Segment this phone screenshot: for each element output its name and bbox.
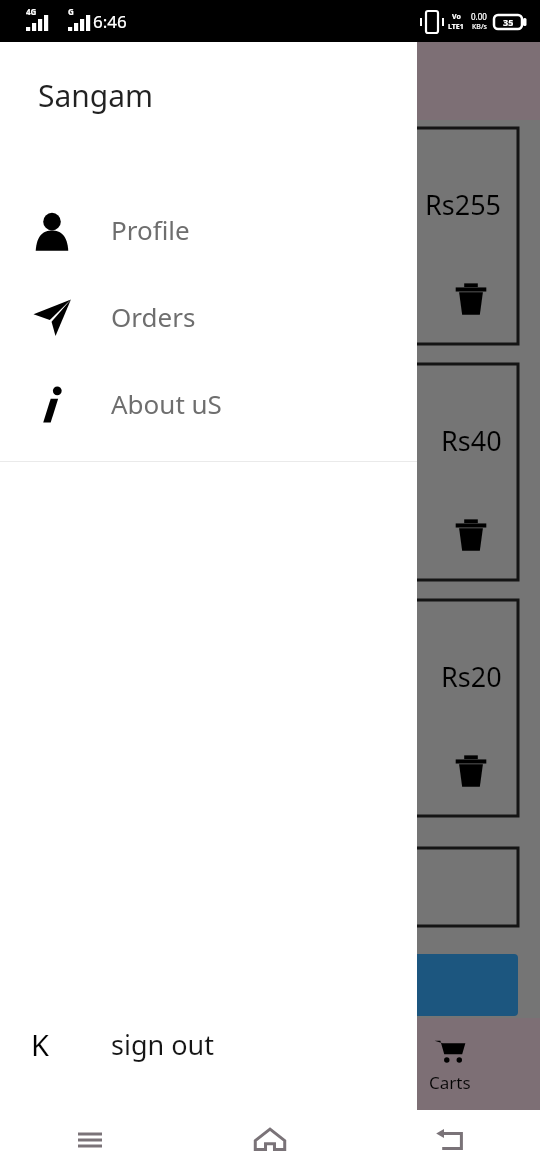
button[interactable]: Home	[180, 1110, 360, 1170]
button[interactable]: About uS	[0, 360, 417, 447]
staticText: 0.00	[471, 11, 487, 22]
button[interactable]: Back	[360, 1110, 540, 1170]
button[interactable]: Recent apps	[0, 1110, 180, 1170]
button[interactable]: Delete item	[454, 518, 488, 552]
button[interactable]: Orders	[0, 273, 417, 360]
staticText: Rs20	[441, 658, 502, 695]
button[interactable]: Shop	[180, 1018, 360, 1110]
staticText: Profile	[111, 212, 190, 247]
button[interactable]: Rs40	[24, 364, 518, 580]
staticText: K	[31, 1025, 49, 1064]
button[interactable]: Delete item	[454, 282, 488, 316]
button[interactable]: Home	[0, 1018, 180, 1110]
button[interactable]: K	[0, 1000, 417, 1088]
staticText: KB/s	[472, 22, 487, 32]
button[interactable]: Rs20	[24, 600, 518, 816]
staticText: About uS	[111, 386, 222, 421]
staticText: sign out	[111, 1026, 214, 1063]
button[interactable]: Rs255	[24, 128, 518, 344]
staticText: Rs255	[425, 186, 502, 223]
staticText: Orders	[111, 299, 196, 334]
button[interactable]: Carts	[360, 1018, 540, 1110]
staticText: LTE1	[448, 22, 464, 32]
staticText: 6:46	[93, 10, 127, 33]
staticText: Vo	[452, 12, 461, 22]
staticText: Carts	[429, 1071, 471, 1094]
staticText: 4G	[26, 6, 37, 17]
staticText: Rs40	[441, 422, 502, 459]
button[interactable]: Delete item	[454, 754, 488, 788]
button[interactable]: PLACE ORDER	[24, 954, 518, 1016]
staticText: Sangam	[38, 75, 154, 116]
button[interactable]: Profile	[0, 186, 417, 273]
staticText: G	[68, 6, 74, 17]
staticText: 35	[503, 16, 514, 28]
